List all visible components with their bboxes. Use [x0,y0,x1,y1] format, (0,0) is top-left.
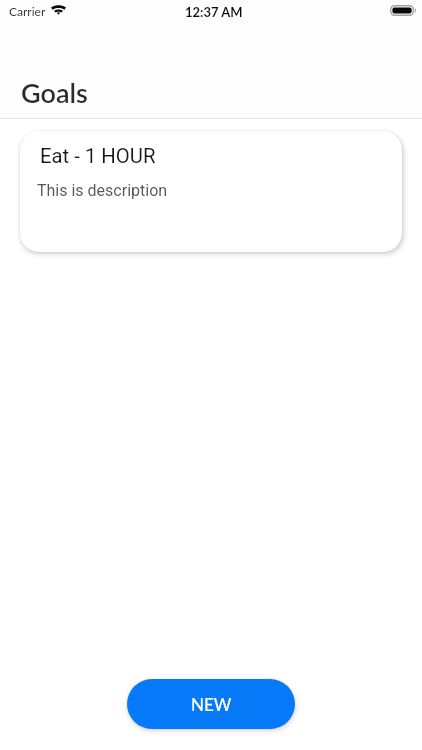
staticText: Goals [21,76,88,108]
button[interactable]: NEW [127,679,295,729]
staticText: 12:37 AM [185,4,243,20]
other: Wi-Fi signal [51,5,66,15]
staticText: NEW [191,694,232,714]
staticText: This is description [37,181,168,200]
staticText: Carrier [9,4,46,18]
staticText: Eat - 1 HOUR [40,144,156,168]
other: Battery full [390,5,416,16]
button[interactable]: Eat - 1 HOUR [20,131,402,252]
